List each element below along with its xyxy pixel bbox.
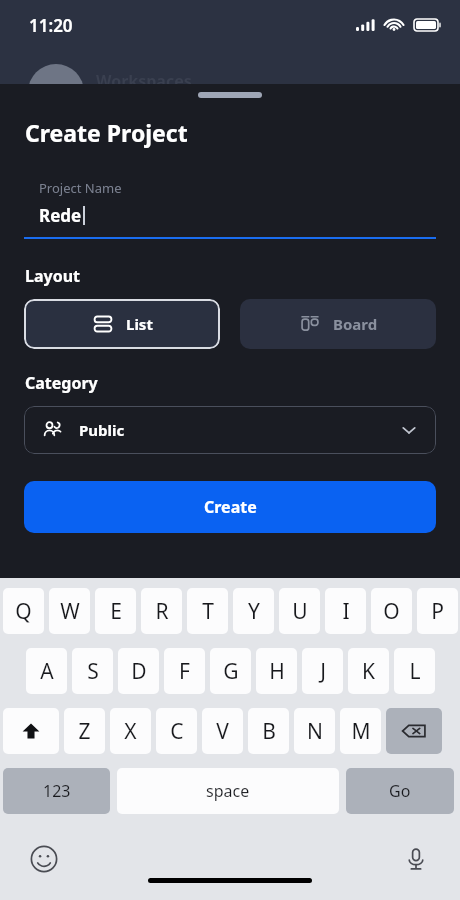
- button[interactable]: E: [95, 588, 136, 634]
- staticText: T: [202, 597, 214, 626]
- staticText: D: [131, 657, 147, 686]
- button[interactable]: V: [202, 708, 243, 754]
- button[interactable]: K: [348, 648, 389, 694]
- staticText: Rede: [39, 204, 82, 227]
- button[interactable]: G: [210, 648, 251, 694]
- button[interactable]: I: [325, 588, 366, 634]
- button[interactable]: L: [394, 648, 435, 694]
- staticText: Q: [15, 597, 32, 626]
- button[interactable]: M: [340, 708, 381, 754]
- staticText: I: [342, 597, 350, 626]
- staticText: Go: [389, 780, 411, 802]
- staticText: O: [383, 597, 400, 626]
- staticText: H: [269, 657, 285, 686]
- button[interactable]: Voice input: [400, 843, 432, 875]
- staticText: A: [40, 657, 54, 686]
- staticText: Workspaces: [96, 70, 192, 92]
- staticText: Project Name: [39, 179, 122, 197]
- staticText: Z: [78, 717, 91, 746]
- button[interactable]: T: [187, 588, 228, 634]
- button[interactable]: Q: [3, 588, 44, 634]
- button[interactable]: N: [294, 708, 335, 754]
- staticText: G: [223, 657, 239, 686]
- button[interactable]: R: [141, 588, 182, 634]
- staticText: Create: [204, 496, 257, 518]
- staticText: space: [206, 780, 250, 802]
- staticText: Y: [248, 597, 260, 626]
- button[interactable]: W: [49, 588, 90, 634]
- staticText: J: [320, 657, 326, 686]
- staticText: W: [60, 597, 80, 626]
- button[interactable]: 123: [3, 768, 110, 814]
- staticText: M: [351, 717, 371, 746]
- staticText: U: [292, 597, 308, 626]
- staticText: F: [179, 657, 190, 686]
- staticText: Board: [333, 314, 378, 334]
- staticText: C: [170, 717, 184, 746]
- button[interactable]: Shift: [3, 708, 59, 754]
- staticText: N: [307, 717, 323, 746]
- button[interactable]: Emoji: [28, 843, 60, 875]
- staticText: R: [155, 597, 169, 626]
- button[interactable]: D: [118, 648, 159, 694]
- button[interactable]: Create: [24, 481, 436, 533]
- staticText: 11:20: [29, 14, 73, 37]
- button[interactable]: U: [279, 588, 320, 634]
- button[interactable]: C: [156, 708, 197, 754]
- button[interactable]: Go: [346, 768, 454, 814]
- button[interactable]: Public: [24, 406, 436, 454]
- staticText: Category: [25, 372, 98, 394]
- staticText: List: [126, 314, 153, 334]
- button[interactable]: Backspace: [386, 708, 442, 754]
- staticText: Layout: [25, 265, 81, 287]
- button[interactable]: H: [256, 648, 297, 694]
- button[interactable]: Y: [233, 588, 274, 634]
- button[interactable]: Z: [64, 708, 105, 754]
- staticText: Create Project: [25, 117, 188, 148]
- staticText: Public: [79, 420, 125, 440]
- staticText: P: [431, 597, 444, 626]
- staticText: 123: [43, 780, 71, 802]
- staticText: L: [409, 657, 421, 686]
- button[interactable]: B: [248, 708, 289, 754]
- staticText: B: [262, 717, 276, 746]
- staticText: K: [362, 657, 375, 686]
- button[interactable]: J: [302, 648, 343, 694]
- staticText: S: [87, 657, 99, 686]
- button[interactable]: A: [26, 648, 67, 694]
- button[interactable]: F: [164, 648, 205, 694]
- staticText: X: [124, 717, 137, 746]
- button[interactable]: List: [24, 299, 220, 349]
- staticText: E: [110, 597, 122, 626]
- button[interactable]: O: [371, 588, 412, 634]
- button[interactable]: P: [417, 588, 458, 634]
- button[interactable]: Board: [240, 299, 436, 349]
- staticText: V: [216, 717, 229, 746]
- button[interactable]: space: [117, 768, 339, 814]
- button[interactable]: S: [72, 648, 113, 694]
- button[interactable]: X: [110, 708, 151, 754]
